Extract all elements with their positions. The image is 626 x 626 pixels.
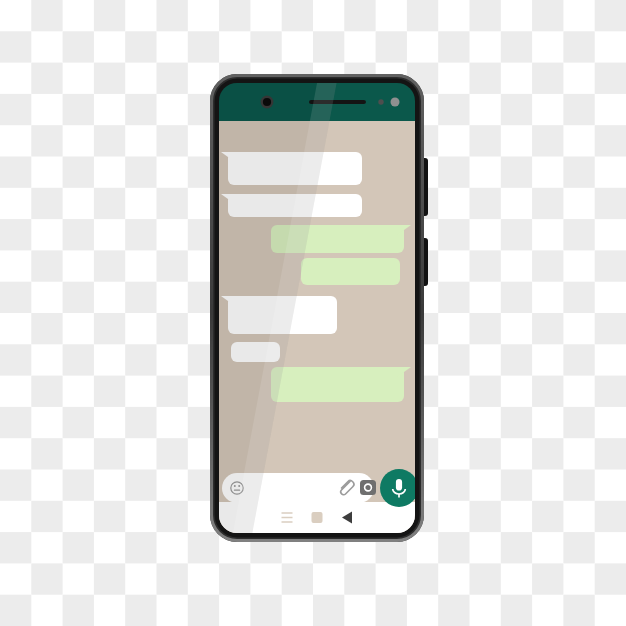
button[interactable]: Recent apps — [278, 515, 296, 533]
button[interactable]: Camera — [359, 479, 377, 497]
button[interactable]: Attach — [339, 479, 357, 497]
button[interactable]: Home — [308, 515, 326, 533]
button[interactable]: Back — [338, 515, 356, 533]
button[interactable]: Message input field — [222, 473, 374, 503]
button[interactable]: Emoji — [228, 479, 246, 497]
button[interactable]: Record voice message — [380, 469, 418, 507]
